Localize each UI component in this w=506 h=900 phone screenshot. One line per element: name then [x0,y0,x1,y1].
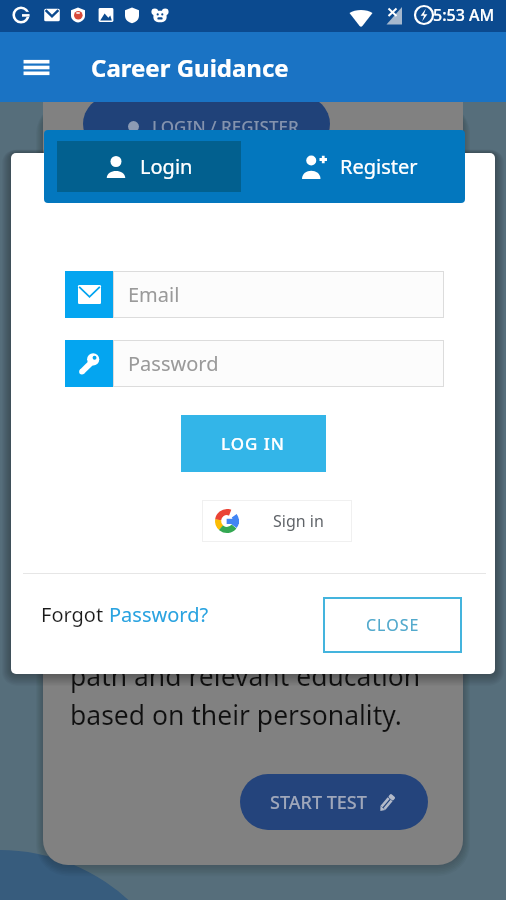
staticText: 5:53 AM [433,4,495,26]
staticText: Login [140,153,193,180]
button[interactable]: Email [65,271,444,318]
staticText: Password? [109,601,209,628]
button[interactable]: Register [254,130,465,203]
staticText: Password [128,350,219,377]
button[interactable]: Sign in [202,500,352,542]
button[interactable]: START TEST [240,774,428,830]
button[interactable]: Forgot [41,597,209,631]
staticText: LOGIN / REGISTER [152,115,299,138]
button[interactable]: Login [57,141,241,192]
button[interactable]: Open navigation menu [14,45,58,89]
staticText: START TEST [270,790,367,815]
button[interactable]: Password [65,340,444,387]
staticText: Sign in [273,510,324,532]
button[interactable]: CLOSE [323,597,462,653]
staticText: Email [128,281,180,308]
staticText: Career Guidance [91,51,289,84]
staticText: Register [340,153,418,180]
button[interactable]: LOG IN [181,415,326,472]
staticText: Forgot [41,601,109,628]
staticText: path and relevant education based on the… [70,658,450,733]
staticText: CLOSE [366,614,420,636]
staticText: LOG IN [221,432,286,455]
button[interactable]: LOGIN / REGISTER [83,96,330,152]
